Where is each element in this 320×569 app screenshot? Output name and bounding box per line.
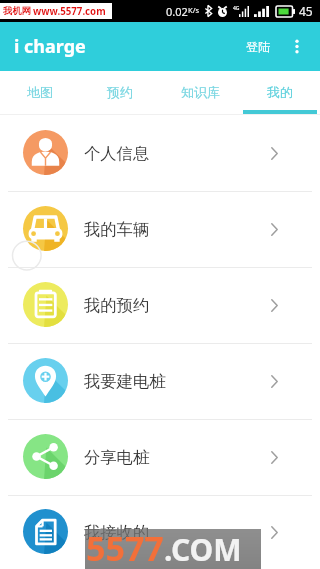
- staticText: .COM: [164, 529, 242, 569]
- staticText: 预约: [107, 84, 133, 100]
- button[interactable]: 预约: [80, 71, 160, 114]
- staticText: 4G: [233, 5, 240, 12]
- button[interactable]: 我要建电桩: [0, 344, 320, 419]
- staticText: 我的车辆: [84, 219, 150, 240]
- staticText: 45: [299, 3, 313, 19]
- staticText: 我接收的: [84, 522, 150, 543]
- button[interactable]: 地图: [0, 71, 80, 114]
- button[interactable]: More options: [280, 25, 320, 68]
- button[interactable]: 登陆: [236, 25, 280, 68]
- button[interactable]: 我的预约: [0, 268, 320, 343]
- button[interactable]: 我的: [240, 71, 320, 114]
- staticText: 知识库: [181, 84, 220, 100]
- staticText: 5577: [86, 525, 164, 569]
- button[interactable]: 我的车辆: [0, 192, 320, 267]
- staticText: 分享电桩: [84, 447, 150, 468]
- staticText: 我的: [267, 84, 293, 100]
- staticText: 0.02: [166, 4, 188, 19]
- staticText: i charge: [14, 34, 86, 59]
- button[interactable]: 知识库: [160, 71, 240, 114]
- button[interactable]: 我接收的: [0, 496, 320, 569]
- button[interactable]: 分享电桩: [0, 420, 320, 495]
- staticText: 个人信息: [84, 143, 150, 164]
- staticText: www.5577.com: [33, 5, 106, 18]
- button[interactable]: 个人信息: [0, 115, 320, 191]
- staticText: 地图: [27, 84, 53, 100]
- staticText: 登陆: [246, 39, 270, 54]
- staticText: 我的预约: [84, 295, 150, 316]
- staticText: 我机网: [3, 5, 31, 17]
- staticText: 我要建电桩: [84, 371, 166, 392]
- staticText: K/s: [188, 5, 200, 15]
